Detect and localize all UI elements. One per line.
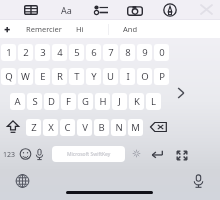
button[interactable]: 1 <box>1 44 16 61</box>
staticText: L <box>151 95 156 108</box>
button[interactable]: A <box>10 93 25 110</box>
button[interactable]: E <box>35 68 50 85</box>
staticText: Aa <box>61 4 72 16</box>
staticText: U <box>107 70 114 83</box>
button[interactable]: V <box>77 119 92 136</box>
button[interactable]: 9 <box>137 44 152 61</box>
staticText: I <box>126 70 130 83</box>
button[interactable]: 4 <box>52 44 67 61</box>
staticText: 6 <box>91 46 97 59</box>
button[interactable]: S <box>27 93 42 110</box>
button[interactable]: 2 <box>18 44 33 61</box>
staticText: S <box>32 95 38 108</box>
staticText: 7 <box>108 46 114 59</box>
staticText: V <box>82 121 88 134</box>
staticText: 2 <box>23 46 29 59</box>
button[interactable]: Backspace <box>150 120 167 134</box>
button[interactable]: O <box>137 68 152 85</box>
button[interactable]: Dictation <box>193 174 204 188</box>
button[interactable]: And <box>110 20 150 38</box>
staticText: 5 <box>74 46 80 59</box>
button[interactable]: Close <box>200 4 213 15</box>
button[interactable]: Camera <box>127 4 143 16</box>
staticText: B <box>98 121 105 134</box>
button[interactable]: R <box>52 68 67 85</box>
staticText: Hi <box>76 24 84 34</box>
staticText: C <box>64 121 71 134</box>
button[interactable]: F <box>61 93 76 110</box>
button[interactable]: 7 <box>103 44 118 61</box>
staticText: D <box>48 95 55 108</box>
button[interactable]: 8 <box>120 44 135 61</box>
staticText: T <box>74 70 80 83</box>
staticText: 0 <box>159 46 165 59</box>
button[interactable]: 0 <box>154 44 169 61</box>
button[interactable]: D <box>44 93 59 110</box>
button[interactable]: Microsoft SwiftKey <box>52 146 125 162</box>
staticText: 123 <box>3 150 16 160</box>
staticText: Q <box>5 70 13 83</box>
button[interactable]: Y <box>86 68 101 85</box>
button[interactable]: Change language <box>15 174 30 188</box>
button[interactable]: Remercier <box>20 20 68 38</box>
button[interactable]: Add <box>0 20 15 38</box>
staticText: P <box>159 70 165 83</box>
button[interactable]: H <box>95 93 110 110</box>
staticText: 1 <box>6 46 12 59</box>
staticText: A <box>14 95 21 108</box>
button[interactable]: L <box>146 93 161 110</box>
button[interactable]: X <box>43 119 58 136</box>
button[interactable]: Hi <box>66 20 94 38</box>
staticText: M <box>131 121 140 134</box>
button[interactable]: U <box>103 68 118 85</box>
button[interactable]: N <box>111 119 126 136</box>
button[interactable]: K <box>129 93 144 110</box>
button[interactable]: Markup <box>163 3 177 17</box>
button[interactable]: Settings <box>132 149 141 158</box>
staticText: 4 <box>57 46 63 59</box>
button[interactable]: Q <box>1 68 16 85</box>
button[interactable]: Voice typing <box>34 147 45 161</box>
button[interactable]: Emoji <box>19 147 32 161</box>
staticText: H <box>99 95 107 108</box>
button[interactable]: Expand keyboard <box>176 150 188 161</box>
staticText: Z <box>31 121 37 134</box>
staticText: X <box>48 121 54 134</box>
button[interactable]: 123 <box>1 146 18 163</box>
staticText: 8 <box>125 46 131 59</box>
button[interactable]: C <box>60 119 75 136</box>
staticText: W <box>21 70 30 83</box>
button[interactable]: Aa <box>57 2 75 18</box>
button[interactable]: J <box>112 93 127 110</box>
staticText: R <box>57 70 63 83</box>
staticText: 3 <box>40 46 46 59</box>
staticText: O <box>141 70 149 83</box>
button[interactable]: B <box>94 119 109 136</box>
staticText: G <box>82 95 89 108</box>
button[interactable]: P <box>154 68 169 85</box>
button[interactable]: T <box>69 68 84 85</box>
button[interactable]: 3 <box>35 44 50 61</box>
button[interactable]: Z <box>26 119 41 136</box>
staticText: N <box>115 121 123 134</box>
staticText: K <box>134 95 140 108</box>
button[interactable]: M <box>128 119 143 136</box>
button[interactable]: Next <box>176 87 186 99</box>
staticText: Y <box>91 70 97 83</box>
button[interactable]: 5 <box>69 44 84 61</box>
button[interactable]: I <box>120 68 135 85</box>
button[interactable]: Insert table <box>24 5 38 15</box>
button[interactable]: G <box>78 93 93 110</box>
button[interactable]: Shift <box>7 120 19 134</box>
button[interactable]: W <box>18 68 33 85</box>
button[interactable]: Checklist <box>94 5 108 15</box>
staticText: And <box>123 24 138 34</box>
staticText: 9 <box>142 46 148 59</box>
staticText: Microsoft SwiftKey <box>67 151 111 158</box>
staticText: E <box>40 70 46 83</box>
staticText: F <box>66 95 71 108</box>
button[interactable]: 6 <box>86 44 101 61</box>
staticText: J <box>118 95 121 108</box>
staticText: Remercier <box>26 24 62 34</box>
button[interactable]: Enter <box>150 148 164 160</box>
